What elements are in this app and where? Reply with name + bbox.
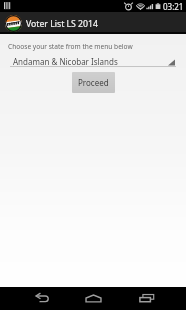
button[interactable]: Andaman & Nicobar Islands [8, 55, 178, 67]
staticText: Choose your state from the menu below [8, 42, 133, 51]
button[interactable]: Proceed [72, 72, 115, 93]
button[interactable]: Home [67, 287, 120, 310]
staticText: 03:21 [163, 1, 184, 12]
button[interactable]: Recent apps [120, 287, 173, 310]
staticText: Proceed [78, 77, 109, 88]
staticText: Voter List LS 2014 [26, 18, 98, 30]
staticText: Andaman & Nicobar Islands [13, 56, 118, 67]
button[interactable]: Back [14, 287, 67, 310]
